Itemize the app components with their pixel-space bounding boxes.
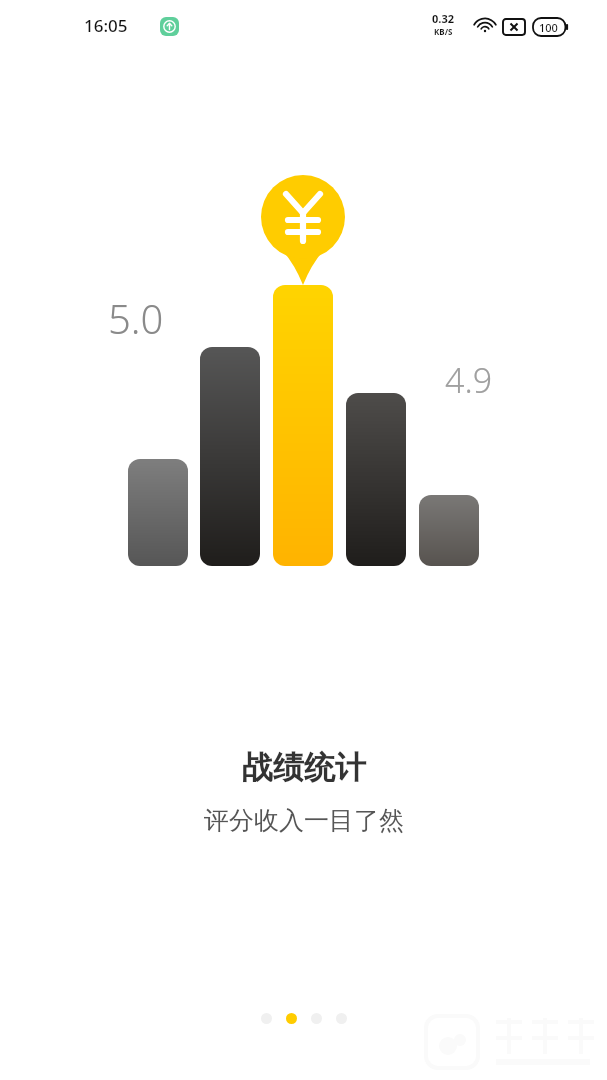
staticText: 评分收入一目了然	[204, 805, 404, 836]
staticText: 战绩统计	[242, 748, 366, 787]
button[interactable]: Page 1	[261, 1013, 272, 1024]
staticText: 0.32	[432, 11, 454, 26]
staticText: 4.9	[445, 357, 493, 403]
button[interactable]: Page 4	[336, 1013, 347, 1024]
staticText: 5.0	[108, 291, 164, 345]
staticText: 16:05	[84, 14, 128, 37]
button[interactable]: Page 2	[286, 1013, 297, 1024]
staticText: KB/S	[434, 26, 453, 37]
staticText: 100	[539, 20, 558, 35]
button[interactable]: Page 3	[311, 1013, 322, 1024]
